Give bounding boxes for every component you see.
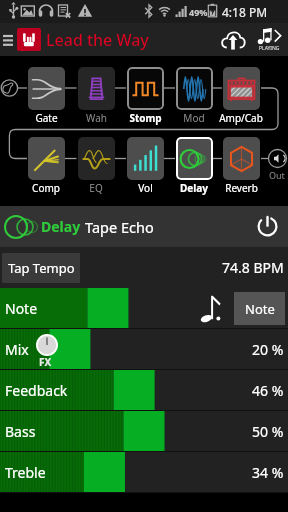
button[interactable]: EQ [72, 137, 120, 195]
button[interactable]: Mod [170, 67, 218, 125]
staticText: Gate [35, 111, 58, 125]
button[interactable]: Comp [22, 137, 70, 195]
staticText: 34 % [252, 463, 284, 482]
button[interactable]: Delay [170, 137, 218, 195]
staticText: Wah [86, 111, 107, 125]
staticText: Stomp [129, 111, 162, 125]
staticText: Comp [32, 181, 60, 195]
staticText: EQ [89, 181, 103, 195]
staticText: Feedback [5, 381, 68, 400]
staticText: 49% [189, 6, 208, 18]
staticText: 20 % [252, 340, 284, 359]
staticText: Mod [183, 111, 205, 125]
button[interactable]: Gate [22, 67, 70, 125]
staticText: Bass [5, 422, 36, 441]
button[interactable]: Note [0, 288, 288, 329]
staticText: Amp/Cab [219, 111, 263, 125]
staticText: Mix [5, 340, 29, 359]
button[interactable]: Tap Tempo [2, 253, 80, 283]
staticText: Note [245, 300, 275, 318]
button[interactable]: Now playing [250, 23, 288, 56]
staticText: Lead the Way [46, 29, 149, 51]
staticText: FX [39, 355, 52, 369]
staticText: 74.8 BPM [222, 258, 284, 277]
staticText: 46 % [252, 381, 284, 400]
button[interactable]: Vol [121, 137, 169, 195]
button[interactable]: Stomp [121, 67, 169, 125]
staticText: Treble [5, 463, 46, 482]
staticText: Delay [41, 217, 81, 236]
staticText: Out [269, 169, 285, 181]
button[interactable]: Power [247, 206, 288, 247]
button[interactable]: Upload to cloud [216, 23, 250, 56]
staticText: PLAYING [259, 45, 280, 52]
button[interactable]: Feedback [0, 370, 288, 411]
button[interactable]: Treble [0, 452, 288, 493]
staticText: Tape Echo [85, 217, 154, 237]
button[interactable]: Wah [72, 67, 120, 125]
button[interactable]: Reverb [217, 137, 265, 195]
button[interactable]: Mix [0, 329, 288, 370]
button[interactable]: Menu [0, 23, 17, 56]
button[interactable]: Bass [0, 411, 288, 452]
staticText: Vol [138, 181, 153, 195]
staticText: 4:18 PM [222, 4, 268, 20]
staticText: Reverb [225, 181, 258, 195]
button[interactable]: App logo [17, 28, 41, 51]
staticText: 50 % [252, 422, 284, 441]
staticText: Note [5, 299, 38, 318]
button[interactable]: Note [234, 292, 285, 325]
staticText: Tap Tempo [8, 259, 75, 277]
button[interactable]: Amp/Cab [217, 67, 265, 125]
staticText: Delay [180, 181, 208, 195]
